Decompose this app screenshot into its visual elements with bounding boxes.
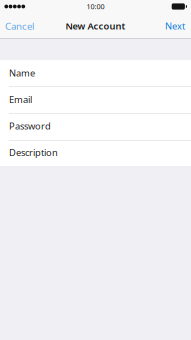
button[interactable]: Email xyxy=(0,86,191,113)
staticText: Cancel xyxy=(5,19,35,33)
staticText: Description xyxy=(9,146,58,159)
staticText: 10:00 xyxy=(86,2,104,11)
button[interactable]: Cancel xyxy=(0,13,43,38)
staticText: Email xyxy=(9,93,32,106)
button[interactable]: Next xyxy=(157,13,191,38)
button[interactable]: Password xyxy=(0,113,191,139)
staticText: Name xyxy=(9,67,35,79)
button[interactable]: Name xyxy=(0,60,191,86)
button[interactable]: Description xyxy=(0,139,191,166)
staticText: New Account xyxy=(65,20,125,32)
staticText: Password xyxy=(9,120,51,132)
staticText: Next xyxy=(165,20,185,32)
